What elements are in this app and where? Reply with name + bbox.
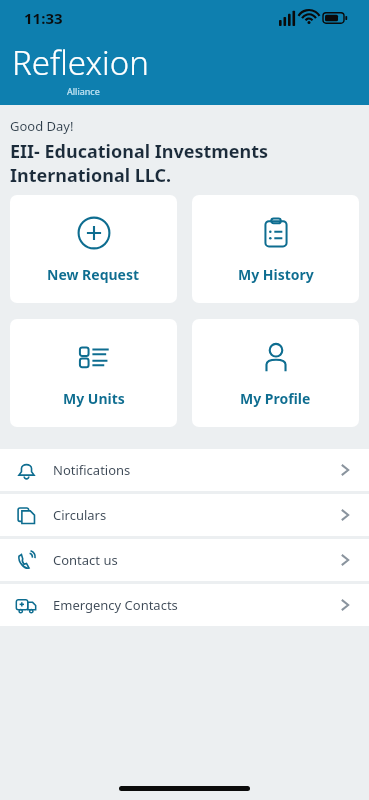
staticText: My Profile	[240, 389, 311, 408]
staticText: Alliance	[67, 85, 100, 97]
staticText: My History	[238, 265, 314, 284]
button[interactable]: My Units	[10, 319, 177, 427]
staticText: Emergency Contacts	[53, 596, 178, 614]
staticText: 11:33	[24, 8, 63, 28]
staticText: Notifications	[53, 461, 131, 479]
button[interactable]: My Profile	[192, 319, 359, 427]
button[interactable]: Notifications	[0, 449, 369, 491]
staticText: Good Day!	[10, 117, 74, 135]
staticText: New Request	[47, 265, 140, 284]
button[interactable]: Circulars	[0, 494, 369, 536]
staticText: My Units	[63, 389, 125, 408]
staticText: Contact us	[53, 551, 118, 569]
staticText: Circulars	[53, 506, 107, 524]
button[interactable]: Contact us	[0, 539, 369, 581]
button[interactable]: New Request	[10, 195, 177, 303]
button[interactable]: Emergency Contacts	[0, 584, 369, 626]
button[interactable]: My History	[192, 195, 359, 303]
staticText: Reflexion	[12, 40, 149, 85]
staticText: EII- Educational Investments Internation…	[10, 139, 269, 187]
